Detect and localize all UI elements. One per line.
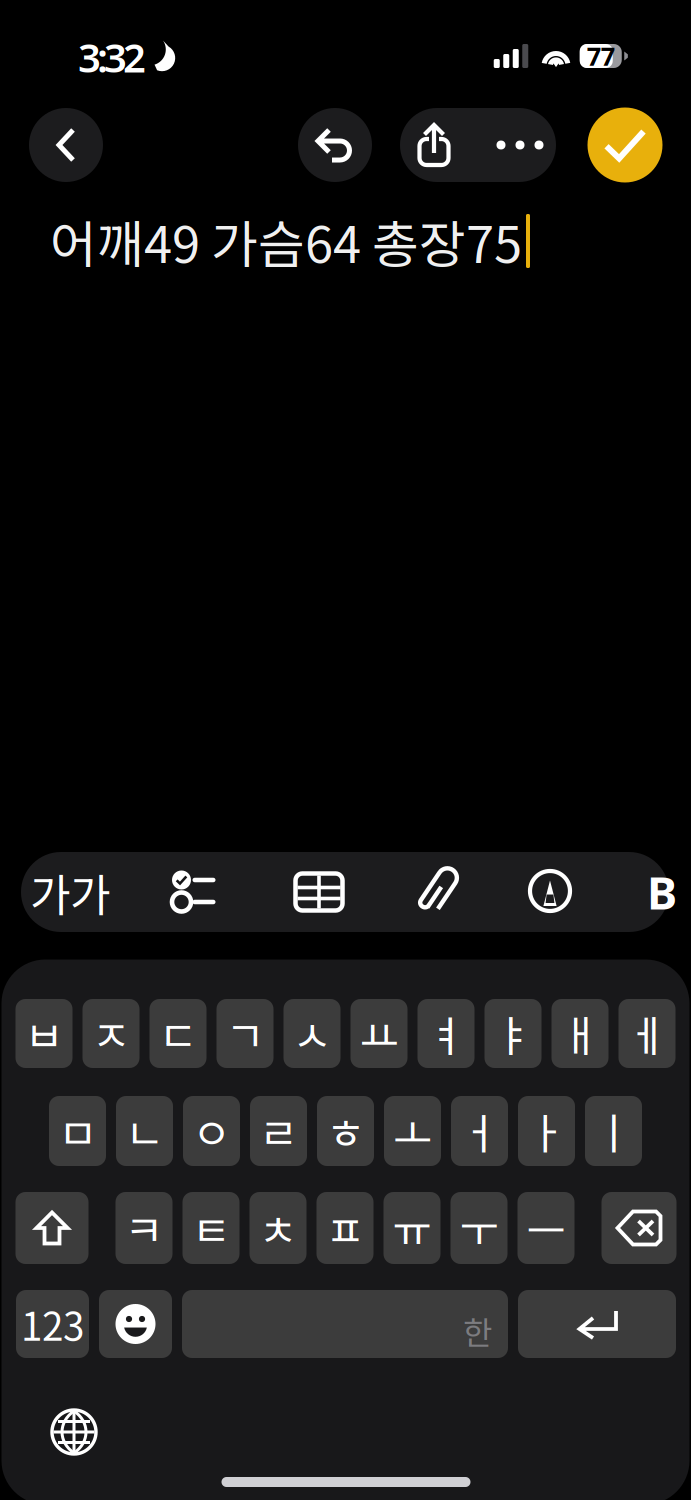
staticText: ㅅ (292, 1003, 331, 1064)
staticText: ㅇ (192, 1100, 231, 1162)
button[interactable]: ㅎ (317, 1096, 374, 1166)
button[interactable]: ㅕ (417, 999, 474, 1068)
button[interactable]: ㅇ (183, 1096, 240, 1166)
button[interactable]: ㅔ (618, 999, 675, 1068)
staticText: ㅕ (426, 1003, 465, 1064)
staticText: ㅁ (58, 1100, 97, 1162)
button[interactable]: ㅂ (15, 999, 72, 1068)
button[interactable]: Back (29, 108, 103, 182)
staticText: ㅐ (560, 1003, 599, 1064)
staticText: ㅍ (325, 1197, 364, 1259)
button[interactable]: ㅋ (115, 1192, 172, 1264)
button[interactable]: ㅍ (316, 1192, 373, 1264)
button[interactable]: Done (587, 107, 662, 182)
staticText: ㅔ (627, 1003, 666, 1064)
button[interactable]: ㅐ (551, 999, 608, 1068)
button[interactable]: ㅈ (82, 999, 139, 1068)
staticText: ㄷ (158, 1003, 197, 1064)
button[interactable]: 가가 (18, 852, 122, 932)
button[interactable]: ㄹ (250, 1096, 307, 1166)
button[interactable]: Space (182, 1290, 508, 1358)
button[interactable]: Delete (601, 1192, 676, 1264)
button[interactable]: ㅏ (518, 1096, 575, 1166)
staticText: ㅠ (392, 1197, 431, 1259)
staticText: ㅈ (91, 1003, 130, 1064)
button[interactable]: ㄷ (149, 999, 206, 1068)
button[interactable]: Bold (647, 852, 681, 932)
staticText: 77 (587, 39, 615, 73)
staticText: ㅜ (459, 1197, 498, 1259)
staticText: ㅌ (191, 1197, 230, 1259)
button[interactable]: Undo (298, 108, 372, 182)
staticText: ㄱ (225, 1003, 264, 1064)
button[interactable]: Table (267, 852, 371, 932)
staticText: ㄹ (259, 1100, 298, 1162)
button[interactable]: ㅣ (585, 1096, 642, 1166)
staticText: ㅡ (526, 1197, 565, 1259)
button[interactable]: Markup (498, 851, 602, 931)
button[interactable]: Emoji (99, 1290, 172, 1358)
staticText: ㅋ (124, 1197, 163, 1259)
staticText: ㅣ (594, 1100, 633, 1162)
button[interactable]: Share (395, 108, 473, 182)
button[interactable]: Next keyboard (44, 1402, 104, 1462)
button[interactable]: Checklist (142, 851, 246, 931)
button[interactable]: ㅓ (451, 1096, 508, 1166)
button[interactable]: ㅜ (450, 1192, 507, 1264)
button[interactable]: ㅊ (249, 1192, 306, 1264)
staticText: ㅊ (258, 1197, 297, 1259)
button[interactable]: ㅛ (350, 999, 407, 1068)
staticText: 한 (463, 1308, 492, 1354)
staticText: 3:32 (78, 30, 146, 83)
button[interactable]: ㅌ (182, 1192, 239, 1264)
staticText: ㅑ (493, 1003, 532, 1064)
staticText: ㅏ (527, 1100, 566, 1162)
button[interactable]: ㅠ (383, 1192, 440, 1264)
staticText: 123 (21, 1296, 84, 1352)
button[interactable]: ㅗ (384, 1096, 441, 1166)
button[interactable]: ㅑ (484, 999, 541, 1068)
button[interactable]: Attach (387, 852, 491, 932)
staticText: 가가 (30, 860, 110, 924)
button[interactable]: Return (518, 1290, 676, 1358)
staticText: B (647, 862, 677, 922)
staticText: 어깨49 가슴64 총장75 (50, 204, 522, 278)
button[interactable]: ㄴ (116, 1096, 173, 1166)
button[interactable]: Shift (15, 1192, 88, 1264)
button[interactable]: ㅡ (517, 1192, 574, 1264)
staticText: ㅗ (393, 1100, 432, 1162)
staticText: ㄴ (125, 1100, 164, 1162)
staticText: ㅎ (326, 1100, 365, 1162)
staticText: ㅛ (359, 1003, 398, 1064)
button[interactable]: 123 (16, 1290, 89, 1358)
staticText: ㅓ (460, 1100, 499, 1162)
button[interactable]: ㅅ (283, 999, 340, 1068)
button[interactable]: ㅁ (49, 1096, 106, 1166)
button[interactable]: More (481, 108, 559, 182)
button[interactable]: ㄱ (216, 999, 273, 1068)
staticText: ㅂ (24, 1003, 63, 1064)
